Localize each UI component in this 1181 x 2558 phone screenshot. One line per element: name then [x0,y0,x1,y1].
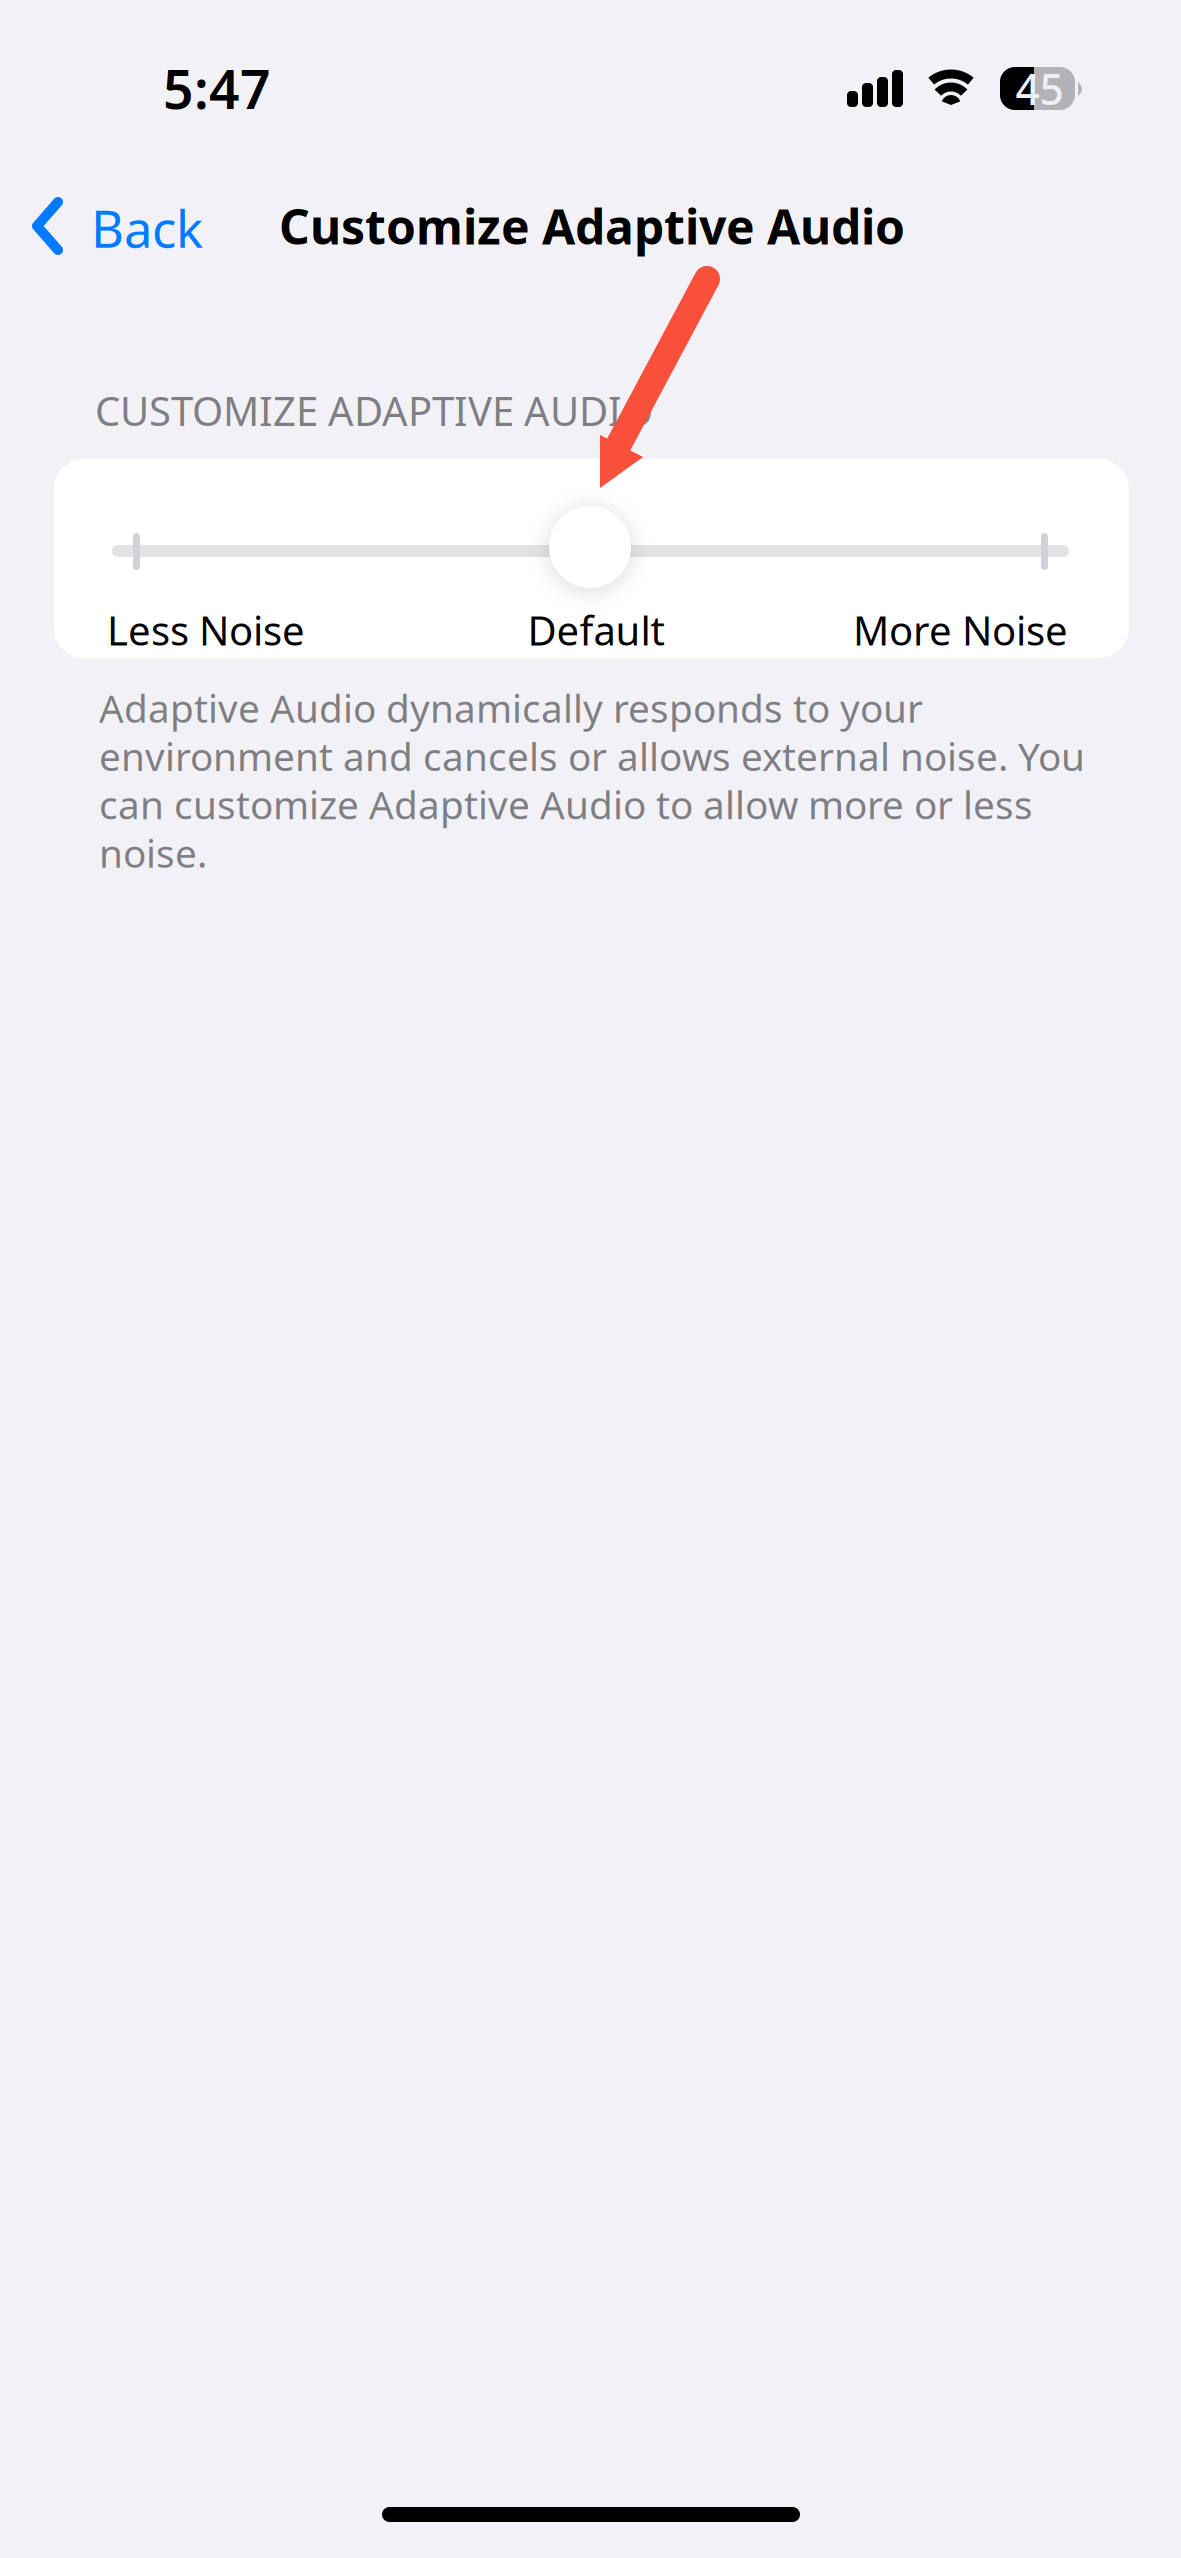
staticText: Adaptive Audio dynamically responds to y… [99,682,1085,878]
staticText: More Noise [853,603,1068,656]
staticText: CUSTOMIZE ADAPTIVE AUDIO [95,384,653,437]
staticText: 5:47 [163,53,271,124]
staticText: 45 [1015,60,1063,117]
button[interactable]: Back [0,176,237,276]
staticText: Default [527,603,664,656]
button[interactable]: Less Noise [54,459,1129,658]
staticText: Less Noise [107,603,305,656]
staticText: Customize Adaptive Audio [279,194,905,258]
staticText: Back [91,194,203,262]
